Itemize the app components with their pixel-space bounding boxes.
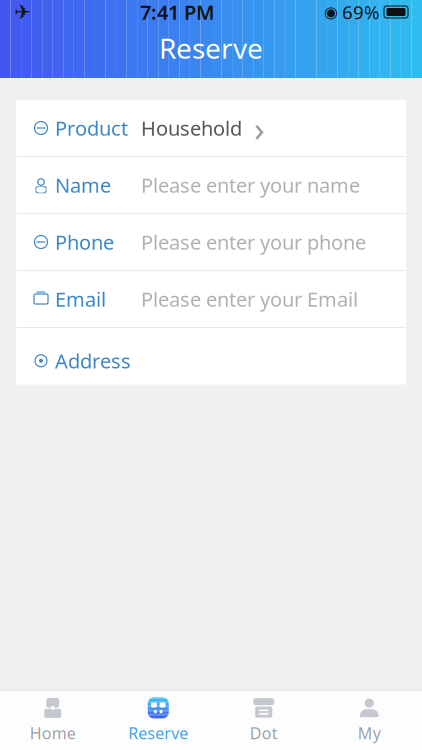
staticText: Product xyxy=(55,115,128,141)
staticText: ✈ xyxy=(14,1,31,23)
staticText: Phone xyxy=(55,229,114,255)
button[interactable]: Product xyxy=(16,100,406,156)
staticText: Address xyxy=(55,347,131,374)
staticText: 69% xyxy=(342,0,380,24)
staticText: Please enter your name xyxy=(141,172,360,198)
staticText: 7:41 PM xyxy=(140,0,215,25)
staticText: My xyxy=(358,722,381,744)
button[interactable]: My xyxy=(316,692,422,748)
staticText: Reserve xyxy=(159,29,263,67)
button[interactable]: Reserve xyxy=(105,692,211,748)
staticText: › xyxy=(254,105,265,151)
button[interactable]: Phone xyxy=(16,214,406,270)
staticText: Email xyxy=(55,286,106,312)
staticText: Please enter your phone xyxy=(141,229,366,255)
staticText: Reserve xyxy=(128,722,188,744)
staticText: Dot xyxy=(250,722,278,744)
staticText: Household xyxy=(141,115,242,141)
button[interactable]: Email xyxy=(16,271,406,327)
button[interactable]: Dot xyxy=(211,692,316,748)
button[interactable]: Name xyxy=(16,157,406,213)
staticText: Please enter your Email xyxy=(141,286,358,312)
staticText: ◉ xyxy=(324,3,338,21)
button[interactable]: Address xyxy=(16,328,406,413)
staticText: Name xyxy=(55,172,111,198)
button[interactable]: Home xyxy=(0,692,105,748)
staticText: Home xyxy=(30,722,76,744)
